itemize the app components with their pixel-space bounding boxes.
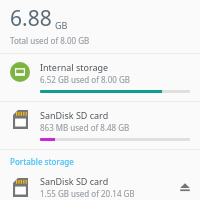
button[interactable]: Eject SD card [170, 174, 200, 200]
staticText: 6.88 [10, 4, 52, 33]
staticText: SanDisk SD card [40, 109, 109, 121]
button[interactable]: SanDisk SD card [0, 102, 200, 149]
staticText: Total used of 8.00 GB [10, 35, 90, 46]
button[interactable]: Internal storage [0, 54, 200, 101]
staticText: 1.55 GB used of 20.14 GB [40, 188, 135, 199]
staticText: 863 MB used of 8.48 GB [40, 122, 130, 133]
staticText: GB [55, 19, 68, 31]
staticText: Internal storage [40, 61, 109, 73]
button[interactable]: SanDisk SD card [0, 174, 200, 200]
staticText: 6.52 GB used of 8.00 GB [40, 74, 130, 85]
staticText: Portable storage [10, 156, 74, 167]
staticText: SanDisk SD card [40, 175, 109, 187]
